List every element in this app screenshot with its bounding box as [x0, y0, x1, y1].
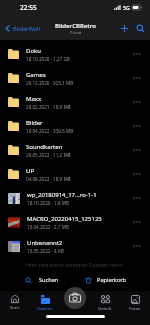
- button[interactable]: Mehr Optionen: [131, 216, 143, 228]
- staticText: Unbenannt2: [27, 239, 63, 247]
- button[interactable]: Kamera: [64, 287, 86, 309]
- button[interactable]: MACRO_20220415_125125: [0, 210, 150, 234]
- button[interactable]: Fotos: [123, 295, 147, 311]
- staticText: 04.08.2022 · 18,9 MB: [26, 176, 71, 182]
- staticText: 18.10.2020 · 1,8 MB: [27, 200, 69, 206]
- button[interactable]: Mehr Optionen: [131, 72, 143, 84]
- button[interactable]: Unbenannt2: [0, 234, 150, 258]
- staticText: BilderCBRetro: [55, 22, 96, 30]
- button[interactable]: Papierkorb: [82, 274, 129, 286]
- staticText: Papierkorb: [97, 276, 126, 284]
- staticText: Privat: [70, 30, 82, 36]
- button[interactable]: Doku: [0, 42, 150, 66]
- staticText: BilderWall: [13, 25, 40, 33]
- button[interactable]: Soundkarten: [0, 138, 150, 162]
- button[interactable]: Maxx: [0, 90, 150, 114]
- staticText: MACRO_20220415_125125: [27, 215, 102, 223]
- button[interactable]: Mehr Optionen: [131, 240, 143, 252]
- button[interactable]: BilderWall: [0, 24, 50, 33]
- staticText: Dateien: [37, 305, 53, 311]
- button[interactable]: Bilder: [0, 114, 150, 138]
- button[interactable]: Geteilt: [93, 295, 117, 311]
- button[interactable]: Mehr Optionen: [131, 48, 143, 60]
- button[interactable]: Mehr Optionen: [131, 120, 143, 132]
- staticText: 26.05.2022 · 11,2 MB: [26, 152, 71, 158]
- button[interactable]: Mehr Optionen: [131, 144, 143, 156]
- button[interactable]: wp_20180914_17...ro-1-1: [0, 186, 150, 210]
- staticText: Games: [26, 71, 46, 79]
- button[interactable]: UP: [0, 162, 150, 186]
- staticText: 15.05.2022 · 4 KB: [27, 248, 64, 254]
- staticText: 22:55: [20, 3, 37, 12]
- staticText: 15.04.2022 · 2,7 MB: [27, 224, 69, 230]
- button[interactable]: Hinzufügen: [118, 22, 131, 35]
- staticText: 5G: [123, 4, 130, 11]
- button[interactable]: Mehr Optionen: [131, 168, 143, 180]
- staticText: Fotos: [129, 305, 141, 311]
- button[interactable]: Suchen: [134, 22, 147, 35]
- staticText: Soundkarten: [26, 143, 63, 151]
- staticText: UP: [26, 167, 35, 175]
- button[interactable]: Suchen: [22, 274, 62, 286]
- staticText: Doku: [26, 47, 41, 55]
- staticText: Start: [10, 304, 20, 310]
- staticText: Bilder: [26, 119, 43, 127]
- staticText: 26.12.2020 · 923,1 MB: [26, 80, 74, 86]
- staticText: Hier sind keine weiteren Dateien mehr.: [0, 261, 150, 268]
- button[interactable]: Start: [3, 295, 27, 310]
- button[interactable]: Mehr Optionen: [131, 192, 143, 204]
- staticText: Suchen: [39, 276, 59, 284]
- button[interactable]: Mehr Optionen: [131, 96, 143, 108]
- button[interactable]: Dateien: [33, 295, 57, 311]
- staticText: 19.04.2022 · 339,6 MB: [26, 128, 74, 134]
- staticText: 28.02.2021 · 19,9 MB: [26, 104, 71, 110]
- staticText: wp_20180914_17...ro-1-1: [27, 191, 97, 199]
- staticText: 18.10.2020 · 1,27 GB: [26, 56, 70, 62]
- staticText: Geteilt: [98, 305, 112, 311]
- button[interactable]: Games: [0, 66, 150, 90]
- staticText: Maxx: [26, 95, 42, 103]
